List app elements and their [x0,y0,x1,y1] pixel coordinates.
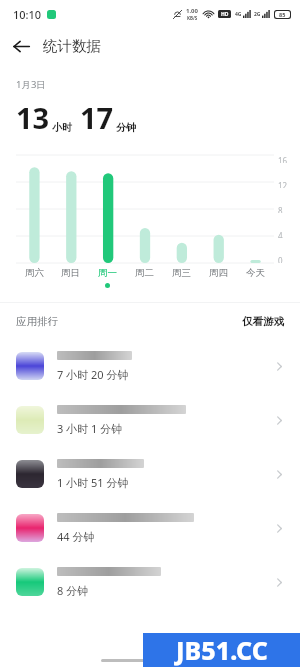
button[interactable]: 周二 [126,267,163,288]
button[interactable]: 周三 [163,267,200,288]
staticText: 小时 [52,121,72,134]
button[interactable]: 周六 [16,267,52,288]
staticText: 周日 [61,267,80,279]
staticText: 16 [278,155,288,163]
button[interactable]: 周一 [89,267,126,288]
staticText: 分钟 [116,121,136,134]
button[interactable]: 今天 [237,267,274,288]
staticText: 12 [278,180,288,188]
staticText: 7 小时 20 分钟 [57,367,129,382]
staticText: 13 [16,98,50,137]
staticText: 1.00 [186,7,198,15]
staticText: 85 [279,11,286,18]
button[interactable]: 仅看游戏 [242,315,284,328]
button[interactable]: 8 分钟 [0,555,300,609]
staticText: 4G [235,11,242,18]
staticText: 44 分钟 [57,529,95,544]
staticText: 仅看游戏 [242,315,284,328]
staticText: 8 [278,205,283,213]
button[interactable]: 3 小时 1 分钟 [0,393,300,447]
button[interactable]: 周日 [52,267,89,288]
staticText: 应用排行 [16,315,58,328]
staticText: JB51.CC [176,633,268,667]
button[interactable]: 1 小时 51 分钟 [0,447,300,501]
staticText: 周一 [98,267,117,279]
button[interactable]: 7 小时 20 分钟 [0,339,300,393]
button[interactable]: 44 分钟 [0,501,300,555]
button[interactable]: 返回 [6,31,36,61]
staticText: 4 [278,230,283,238]
staticText: 1 小时 51 分钟 [57,475,129,490]
staticText: 8 分钟 [57,583,89,598]
staticText: 3 小时 1 分钟 [57,421,123,436]
staticText: 1月3日 [16,78,46,91]
staticText: 周六 [25,267,44,279]
staticText: 周四 [209,267,228,279]
staticText: 2G [254,11,261,18]
staticText: 周二 [135,267,154,279]
staticText: HD [221,11,229,18]
staticText: 周三 [172,267,191,279]
staticText: 0 [278,255,283,263]
staticText: KB/S [187,15,198,21]
staticText: 今天 [246,267,265,279]
staticText: 10:10 [13,7,42,22]
staticText: 17 [80,98,114,137]
button[interactable]: 周四 [200,267,237,288]
staticText: 统计数据 [43,37,101,55]
